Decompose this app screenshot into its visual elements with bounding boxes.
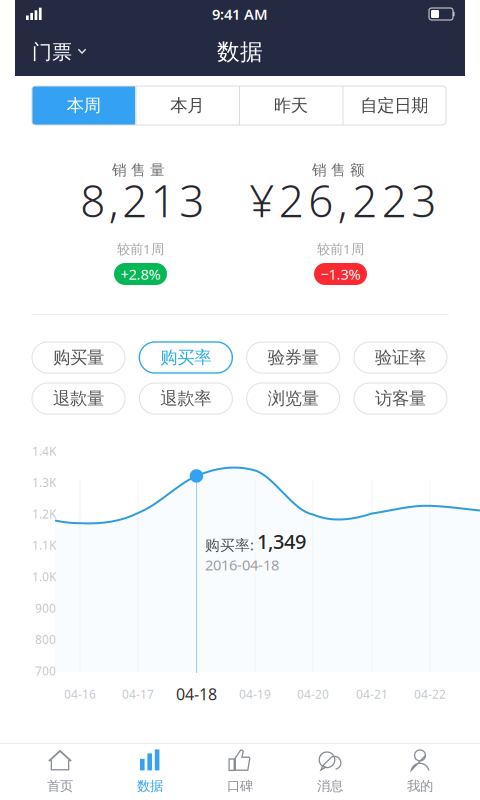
staticText: 销售量: [112, 161, 165, 179]
staticText: 04-21: [356, 686, 388, 702]
staticText: 700: [35, 663, 56, 679]
button[interactable]: 退款率: [139, 383, 232, 414]
staticText: 04-18: [176, 683, 217, 705]
staticText: 销售额: [312, 161, 365, 179]
staticText: 退款量: [53, 388, 104, 409]
staticText: 昨天: [274, 95, 308, 116]
staticText: ¥26,223: [249, 171, 436, 229]
button[interactable]: 消息: [285, 743, 375, 800]
staticText: 8,213: [80, 171, 204, 229]
button[interactable]: 购买率: [139, 342, 232, 373]
button[interactable]: 数据: [105, 743, 195, 800]
staticText: 浏览量: [268, 388, 319, 409]
staticText: 较前1周: [317, 240, 364, 258]
staticText: 购买量: [53, 347, 104, 368]
button[interactable]: 我的: [375, 743, 465, 800]
button[interactable]: 首页: [15, 743, 105, 800]
staticText: 2016-04-18: [205, 555, 279, 574]
staticText: 我的: [407, 778, 433, 794]
staticText: 04-22: [414, 686, 446, 702]
staticText: 首页: [47, 778, 73, 794]
button[interactable]: 门票: [29, 33, 90, 71]
staticText: 数据: [137, 778, 163, 794]
staticText: 04-16: [64, 686, 96, 702]
staticText: +2.8%: [120, 264, 160, 284]
staticText: 800: [35, 631, 56, 647]
staticText: 较前1周: [117, 240, 164, 258]
staticText: 门票: [32, 40, 72, 64]
button[interactable]: 自定日期: [342, 86, 446, 125]
staticText: 1.2K: [32, 506, 56, 522]
staticText: −1.3%: [320, 264, 360, 284]
staticText: 1.1K: [32, 537, 56, 553]
staticText: 1,349: [257, 528, 306, 555]
staticText: 消息: [317, 778, 343, 794]
staticText: 自定日期: [360, 95, 428, 116]
staticText: 9:41 AM: [212, 4, 268, 24]
button[interactable]: 浏览量: [247, 383, 340, 414]
button[interactable]: 退款量: [32, 383, 125, 414]
staticText: 1.4K: [32, 443, 56, 459]
button[interactable]: 验券量: [247, 342, 340, 373]
staticText: 口碑: [227, 778, 253, 794]
staticText: 数据: [217, 38, 263, 66]
staticText: 900: [35, 600, 56, 616]
button[interactable]: 口碑: [195, 743, 285, 800]
staticText: 购买率:: [205, 535, 254, 555]
staticText: 04-17: [122, 686, 154, 702]
staticText: 本月: [170, 95, 204, 116]
button[interactable]: 昨天: [239, 86, 342, 125]
button[interactable]: 购买量: [32, 342, 125, 373]
button[interactable]: 验证率: [354, 342, 447, 373]
staticText: 04-19: [239, 686, 271, 702]
button[interactable]: 访客量: [354, 383, 447, 414]
staticText: 验券量: [268, 347, 319, 368]
staticText: 本周: [67, 95, 101, 116]
staticText: 04-20: [297, 686, 329, 702]
staticText: 退款率: [160, 388, 211, 409]
staticText: 访客量: [375, 388, 426, 409]
staticText: 购买率: [160, 347, 211, 368]
button[interactable]: 本周: [32, 86, 135, 125]
staticText: 1.0K: [32, 569, 56, 584]
staticText: 1.3K: [32, 474, 56, 490]
button[interactable]: 本月: [135, 86, 239, 125]
staticText: 验证率: [375, 347, 426, 368]
